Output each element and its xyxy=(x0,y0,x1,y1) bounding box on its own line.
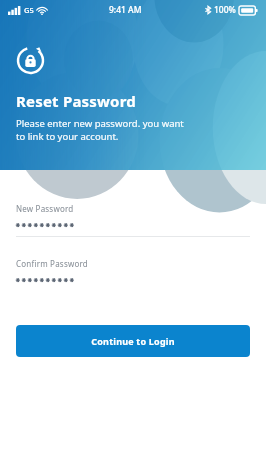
staticText: Continue to Login xyxy=(91,335,175,347)
staticText: Please enter new password. you want to l… xyxy=(16,117,184,143)
button[interactable]: Continue to Login xyxy=(16,325,250,357)
staticText: Reset Password xyxy=(16,91,136,111)
staticText: 9:41 AM xyxy=(109,4,142,16)
staticText: Confirm Password xyxy=(16,258,88,269)
staticText: G5 xyxy=(24,5,34,15)
button[interactable]: Confirm Password xyxy=(0,237,266,284)
staticText: New Password xyxy=(16,203,74,214)
staticText: 100% xyxy=(214,4,236,16)
button[interactable]: New Password xyxy=(0,170,266,236)
